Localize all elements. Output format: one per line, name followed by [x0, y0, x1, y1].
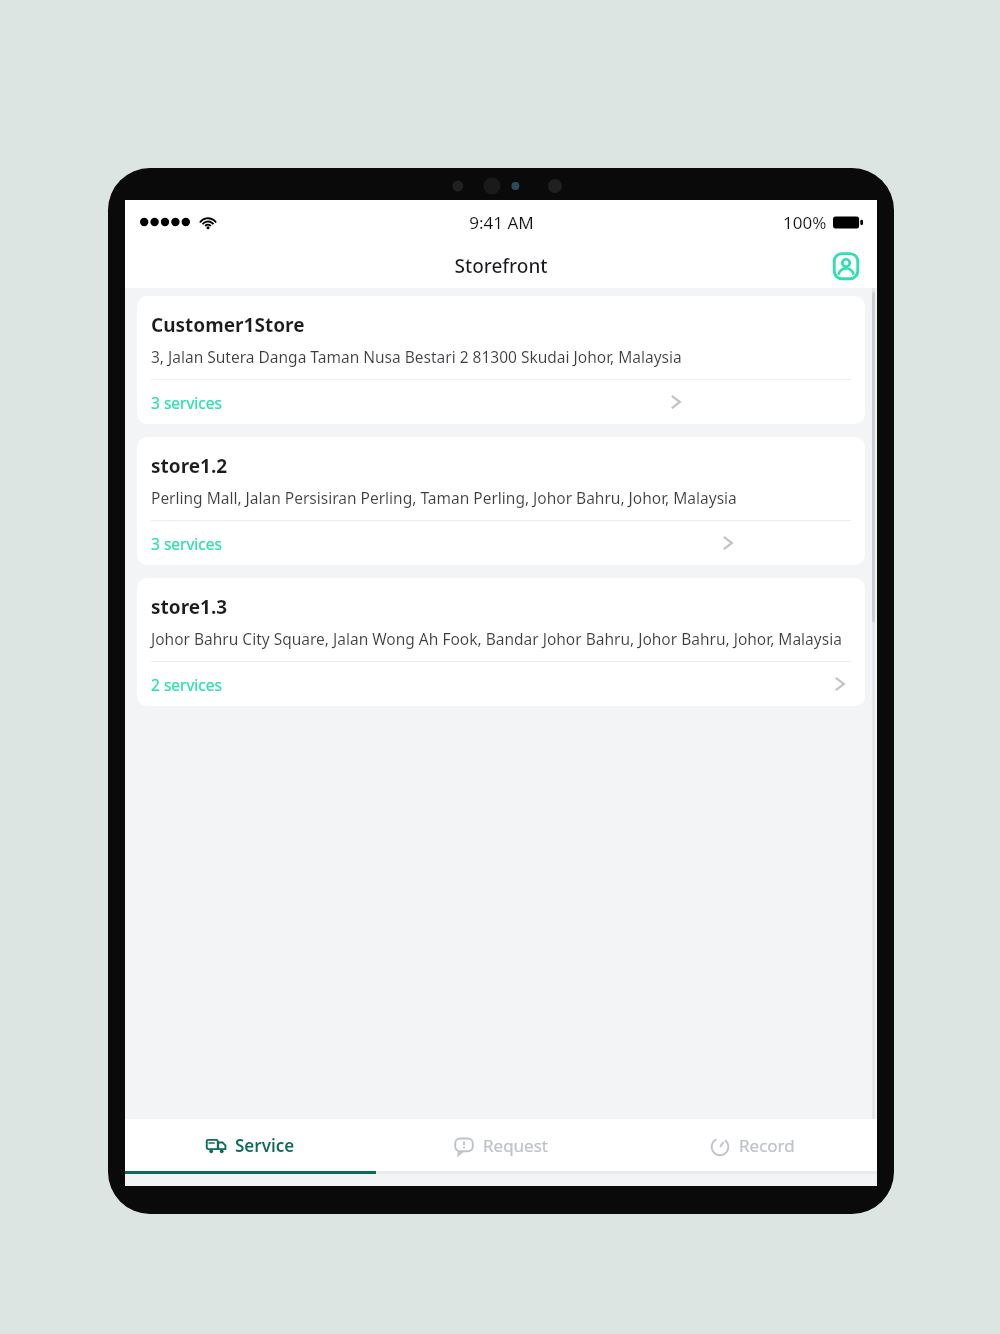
button[interactable]: Record [626, 1119, 877, 1171]
staticText: 3 services [151, 392, 222, 413]
button[interactable]: Account [825, 245, 867, 287]
staticText: Customer1Store [151, 312, 305, 338]
staticText: 3 services [151, 533, 222, 554]
staticText: 100% [783, 211, 827, 234]
staticText: Service [235, 1134, 295, 1157]
button[interactable]: Request [375, 1119, 626, 1171]
button[interactable]: store1.2 [137, 437, 865, 565]
staticText: 9:41 AM [469, 211, 534, 234]
staticText: Record [739, 1134, 795, 1157]
staticText: 3, Jalan Sutera Danga Taman Nusa Bestari… [151, 346, 682, 367]
button[interactable]: Customer1Store [137, 296, 865, 424]
button[interactable]: store1.3 [137, 578, 865, 706]
staticText: Request [483, 1134, 548, 1157]
staticText: store1.3 [151, 594, 228, 620]
staticText: 2 services [151, 674, 222, 695]
staticText: store1.2 [151, 453, 228, 479]
staticText: Perling Mall, Jalan Persisiran Perling, … [151, 487, 737, 508]
button[interactable]: Service [125, 1119, 375, 1171]
staticText: Johor Bahru City Square, Jalan Wong Ah F… [151, 628, 842, 649]
staticText: Storefront [454, 253, 548, 279]
